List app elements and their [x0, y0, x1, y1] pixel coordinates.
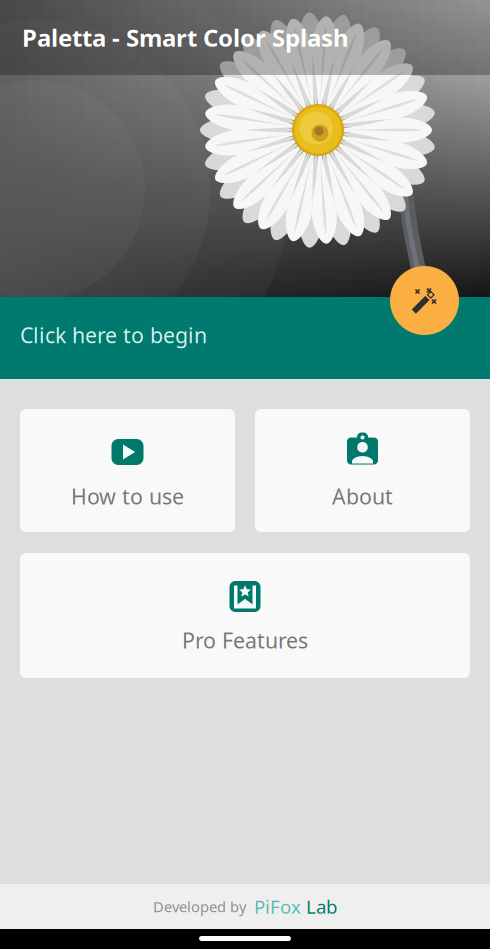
staticText: How to use — [71, 482, 184, 510]
staticText: PiFox — [254, 894, 301, 919]
staticText — [246, 897, 254, 916]
button[interactable]: Click here to begin — [0, 297, 490, 379]
staticText: About — [332, 482, 393, 510]
staticText: Developed by — [153, 897, 246, 916]
staticText: Pro Features — [182, 626, 308, 654]
button[interactable]: Pro Features — [20, 553, 470, 678]
staticText: Click here to begin — [20, 321, 207, 349]
button[interactable]: Magic colour splash — [390, 266, 459, 335]
button[interactable]: About — [255, 409, 470, 532]
button[interactable]: How to use — [20, 409, 235, 532]
staticText: Paletta - Smart Color Splash — [22, 22, 349, 53]
staticText: Lab — [301, 894, 337, 919]
